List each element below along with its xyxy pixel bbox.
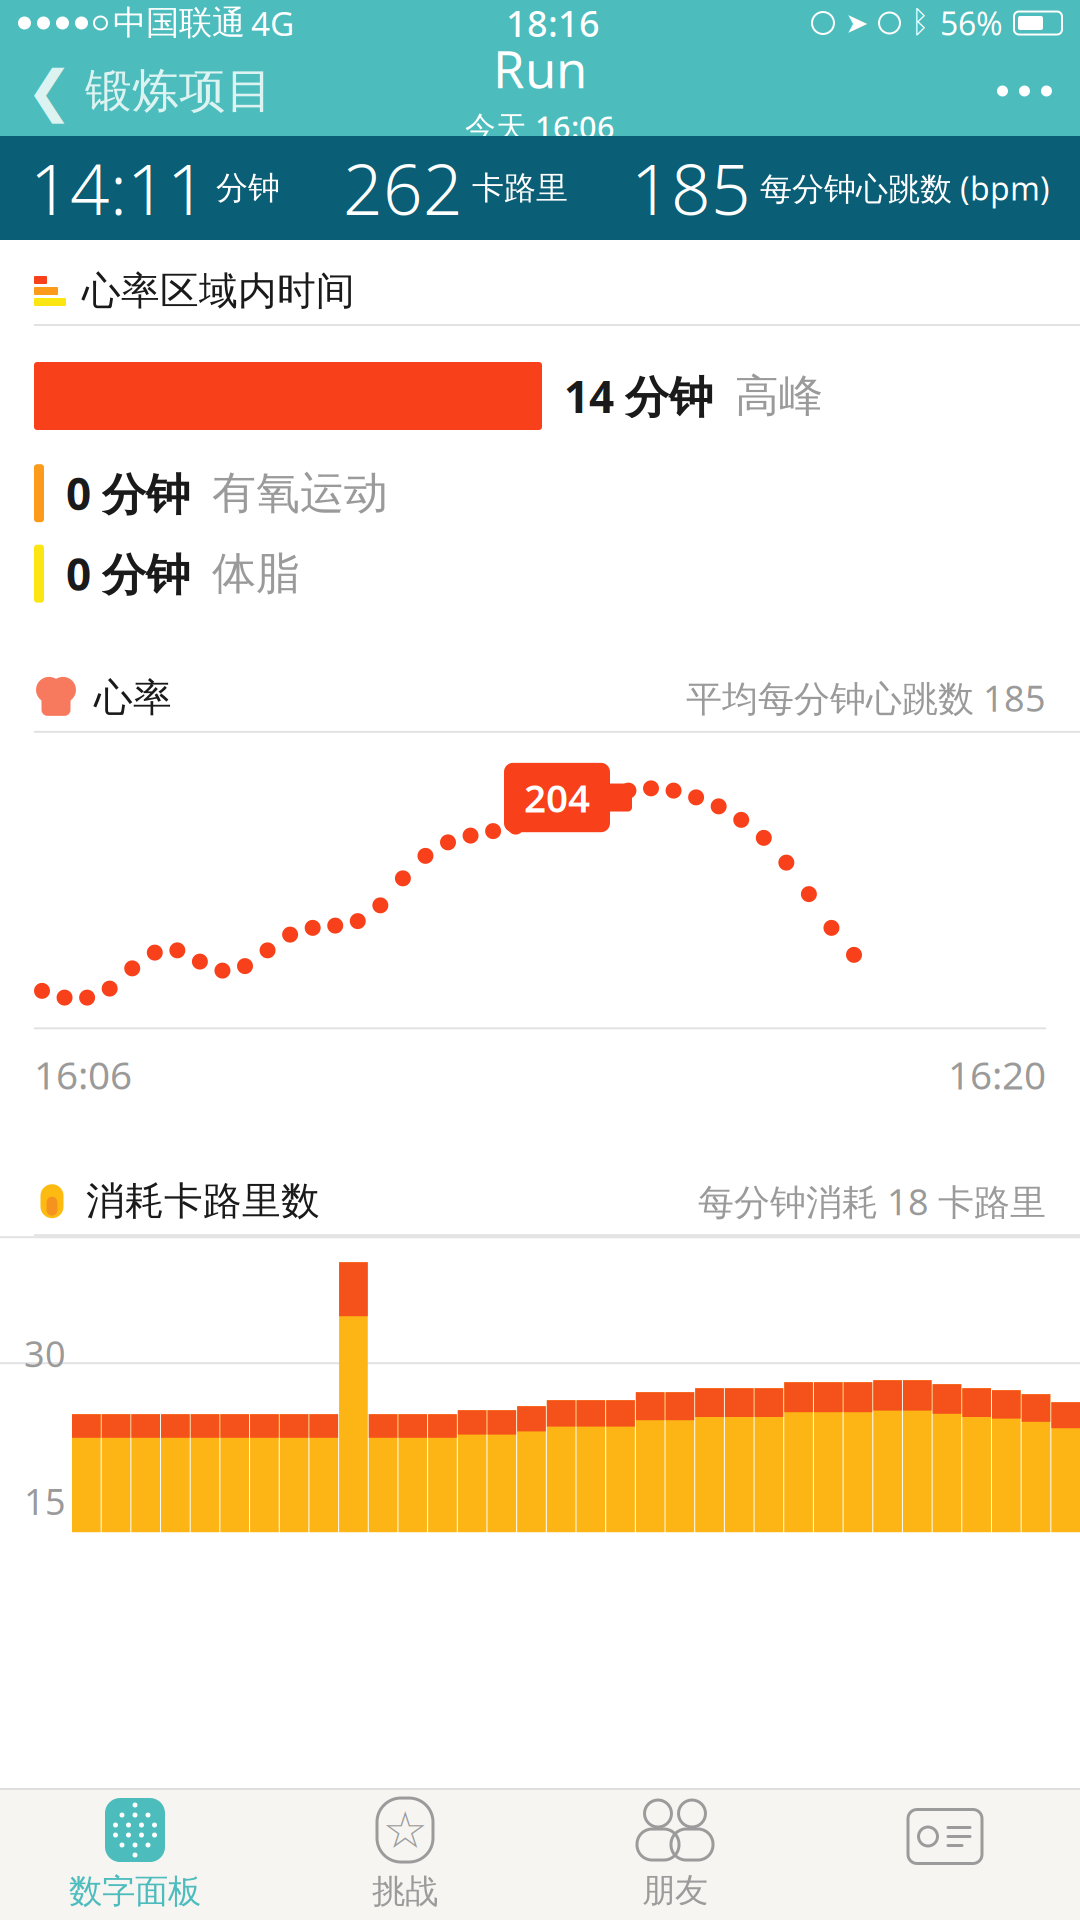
staticText: 18:16 bbox=[506, 0, 600, 47]
staticText: Run bbox=[493, 35, 587, 102]
staticText: 卡路里 bbox=[472, 168, 568, 208]
staticText: 心率区域内时间 bbox=[82, 267, 355, 315]
button[interactable]: 我的 bbox=[810, 1797, 1080, 1912]
staticText: 有氧运动 bbox=[212, 466, 388, 520]
staticText: 朋友 bbox=[642, 1870, 708, 1911]
staticText: 16:20 bbox=[948, 1049, 1046, 1100]
button[interactable]: 朋友 bbox=[540, 1787, 810, 1920]
staticText: 数字面板 bbox=[69, 1871, 201, 1912]
staticText: 0 分钟 bbox=[66, 544, 190, 603]
staticText: 56% bbox=[940, 2, 1003, 44]
staticText: 4G bbox=[251, 1, 294, 45]
staticText: 今天 16:06 bbox=[465, 106, 615, 147]
staticText: ☆ bbox=[382, 1801, 427, 1859]
staticText: 0 分钟 bbox=[66, 464, 190, 522]
staticText: 14 分钟 bbox=[564, 367, 713, 425]
staticText: 高峰 bbox=[735, 369, 823, 423]
staticText: 体脂 bbox=[212, 547, 300, 601]
staticText: 185 bbox=[631, 142, 751, 234]
staticText: ❮ bbox=[26, 59, 73, 123]
staticText: 平均每分钟心跳数 185 bbox=[686, 674, 1046, 722]
staticText: 204 bbox=[524, 772, 590, 823]
staticText: 中国联通 bbox=[113, 2, 245, 43]
staticText: 分钟 bbox=[216, 168, 280, 208]
staticText: 15 bbox=[24, 1477, 66, 1525]
button[interactable]: 数字面板 bbox=[0, 1786, 270, 1920]
staticText: 锻炼项目 bbox=[85, 62, 273, 120]
staticText: 消耗卡路里数 bbox=[86, 1177, 320, 1225]
staticText: 16:06 bbox=[34, 1049, 132, 1100]
button[interactable]: ☆ bbox=[270, 1786, 540, 1920]
staticText: ➤ bbox=[845, 7, 868, 39]
staticText: ᛒ bbox=[911, 8, 929, 38]
button[interactable]: ❮ bbox=[0, 45, 299, 137]
staticText: 每分钟消耗 18 卡路里 bbox=[698, 1177, 1046, 1225]
button[interactable]: 更多 bbox=[969, 59, 1080, 122]
staticText: 262 bbox=[343, 142, 463, 234]
staticText: 挑战 bbox=[372, 1871, 438, 1912]
staticText: 14:11 bbox=[30, 142, 207, 234]
staticText: 每分钟心跳数 (bpm) bbox=[760, 167, 1050, 209]
staticText: 心率 bbox=[94, 674, 172, 722]
staticText: 30 bbox=[24, 1329, 66, 1377]
